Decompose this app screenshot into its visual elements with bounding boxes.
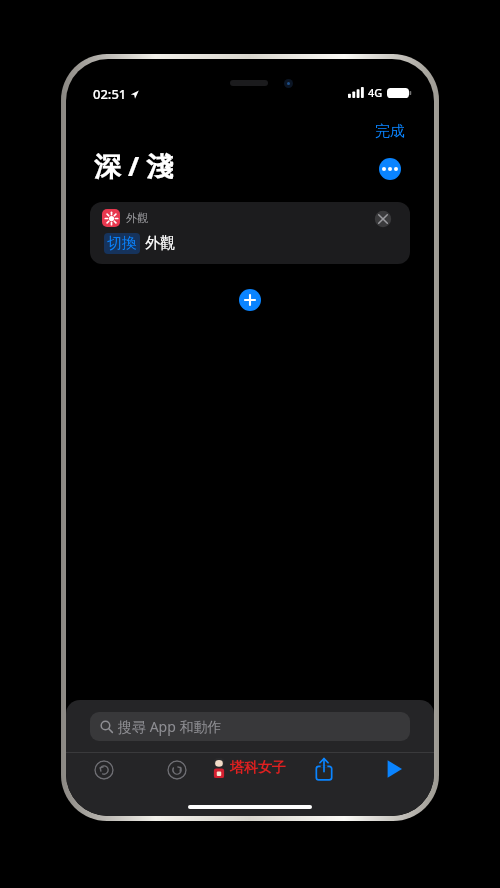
staticText: 02:51 <box>93 85 127 103</box>
staticText: 塔科女子 <box>230 759 286 777</box>
button[interactable]: 外觀 <box>90 202 410 264</box>
button[interactable]: Undo <box>94 760 114 780</box>
button[interactable]: Run shortcut <box>384 758 404 780</box>
button[interactable]: More options <box>379 158 401 180</box>
staticText: 外觀 <box>126 211 148 225</box>
button[interactable]: Share <box>312 756 336 782</box>
staticText: 切換 <box>107 234 137 253</box>
staticText: 深 / 淺 <box>94 147 174 184</box>
button[interactable]: Remove action <box>374 210 392 228</box>
button[interactable]: Add action <box>239 289 261 311</box>
staticText: 外觀 <box>145 234 175 253</box>
button[interactable]: Redo <box>167 760 187 780</box>
staticText: 搜尋 App 和動作 <box>118 717 222 736</box>
button[interactable]: 完成 <box>369 119 411 144</box>
staticText: 完成 <box>375 122 405 141</box>
button[interactable]: 搜尋 App 和動作 <box>90 712 410 741</box>
staticText: 4G <box>368 85 383 100</box>
